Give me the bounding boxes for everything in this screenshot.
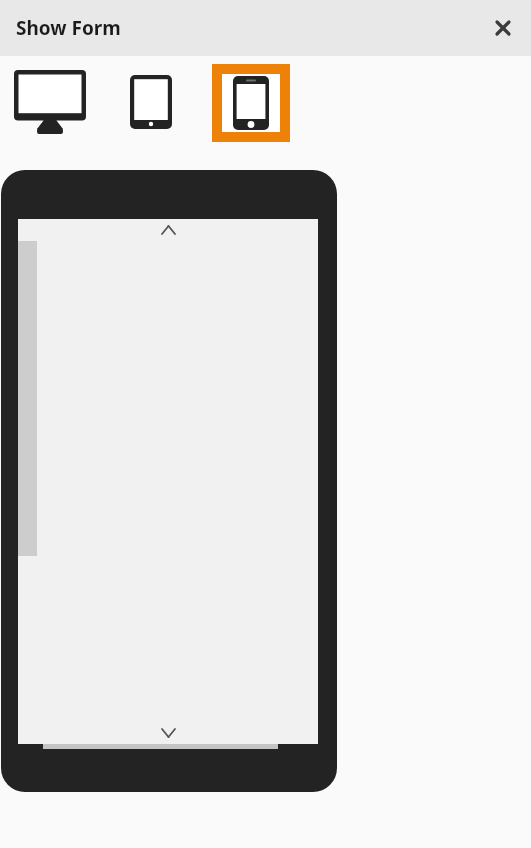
staticText: Show Form (16, 15, 121, 41)
button[interactable]: Scroll up (159, 219, 178, 241)
staticText: Contact Data (38, 231, 191, 265)
button[interactable]: Desktop preview (8, 62, 92, 142)
button[interactable]: Tablet preview (122, 66, 180, 138)
button[interactable]: Scroll down (159, 722, 178, 744)
button[interactable]: Close (485, 10, 521, 46)
button[interactable]: Submit (43, 737, 278, 749)
button[interactable]: Phone preview, selected (222, 74, 280, 132)
